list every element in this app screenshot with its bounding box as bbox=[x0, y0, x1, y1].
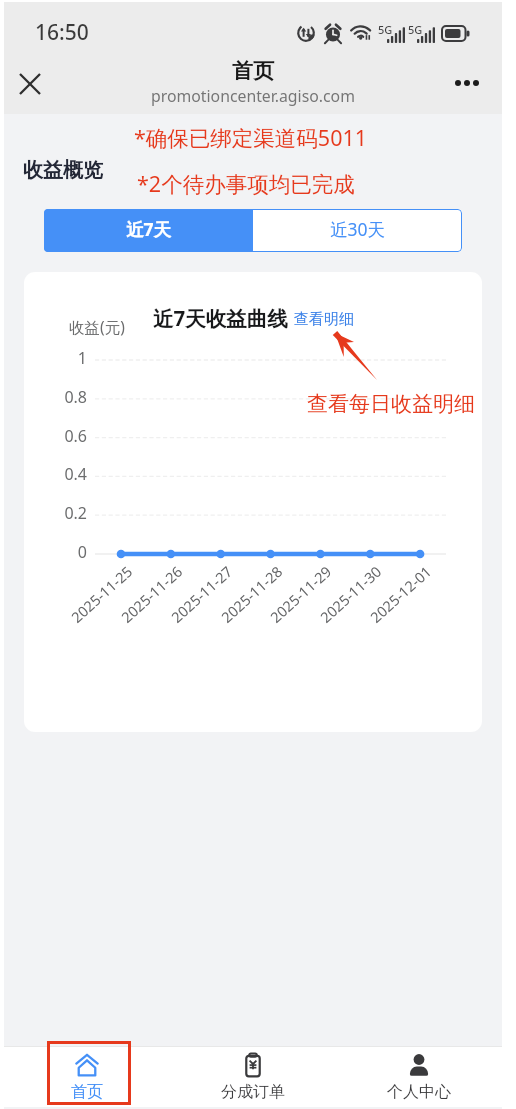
button[interactable]: 查看明细 bbox=[294, 310, 354, 329]
staticText: 近7天收益曲线 bbox=[153, 304, 288, 332]
staticText: 5G bbox=[378, 22, 393, 37]
staticText: promotioncenter.agiso.com bbox=[151, 85, 355, 107]
staticText: 2025-11-28 bbox=[216, 561, 286, 627]
staticText: 2025-11-27 bbox=[166, 561, 236, 627]
staticText: 0.8 bbox=[34, 386, 87, 408]
button[interactable]: More options bbox=[444, 60, 490, 106]
staticText: 首页 bbox=[71, 1082, 103, 1102]
button[interactable]: 近7天 bbox=[44, 209, 253, 252]
staticText: 近7天 bbox=[126, 217, 172, 241]
staticText: 2025-12-01 bbox=[365, 561, 435, 627]
staticText: 2025-11-30 bbox=[315, 561, 385, 627]
staticText: 1 bbox=[34, 347, 87, 369]
staticText: *2个待办事项均已完成 bbox=[137, 169, 355, 198]
staticText: 0 bbox=[34, 541, 87, 563]
button[interactable]: Close bbox=[7, 60, 53, 106]
staticText: 首页 bbox=[232, 58, 274, 84]
staticText: 0.4 bbox=[34, 463, 87, 485]
staticText: 收益概览 bbox=[23, 158, 103, 183]
staticText: 2025-11-26 bbox=[116, 561, 186, 627]
staticText: *确保已绑定渠道码5011 bbox=[134, 123, 368, 152]
staticText: 2025-11-29 bbox=[265, 561, 335, 627]
staticText: 收益(元) bbox=[69, 316, 125, 337]
staticText: 16:50 bbox=[35, 18, 89, 47]
staticText: 个人中心 bbox=[387, 1082, 451, 1102]
staticText: 分成订单 bbox=[221, 1082, 285, 1102]
staticText: 0.2 bbox=[34, 502, 87, 524]
button[interactable]: 个人中心 bbox=[336, 1047, 502, 1107]
button[interactable]: 分成订单 bbox=[170, 1047, 336, 1107]
button[interactable]: 首页 bbox=[4, 1047, 170, 1107]
staticText: 2025-11-25 bbox=[66, 561, 136, 627]
staticText: 0.6 bbox=[34, 425, 87, 447]
staticText: 近30天 bbox=[330, 217, 386, 241]
staticText: 5G bbox=[408, 22, 423, 37]
staticText: 查看每日收益明细 bbox=[307, 391, 475, 417]
button[interactable]: 近30天 bbox=[253, 209, 462, 252]
